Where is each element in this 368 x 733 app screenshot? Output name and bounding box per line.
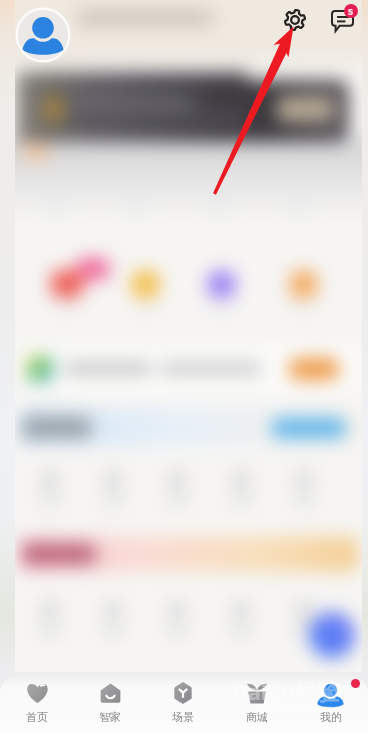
staticText: 5 (348, 5, 354, 17)
staticText: jingyan.baidu.com (246, 701, 333, 715)
staticText: 我的 (320, 710, 342, 724)
button[interactable]: 首页 (0, 675, 73, 733)
staticText: 商城 (246, 710, 268, 724)
staticText: 智家 (99, 710, 121, 724)
staticText: 首页 (26, 710, 48, 724)
button[interactable]: 场景 (146, 675, 220, 733)
staticText: Baidu经验 (233, 676, 340, 706)
staticText: 场景 (172, 710, 194, 724)
button[interactable]: Profile (15, 7, 71, 63)
button[interactable]: 智家 (73, 675, 146, 733)
button[interactable]: 我的 (294, 675, 368, 733)
button[interactable]: Messages (330, 4, 360, 34)
button[interactable]: 商城 (220, 675, 294, 733)
button[interactable]: Settings (283, 8, 307, 32)
